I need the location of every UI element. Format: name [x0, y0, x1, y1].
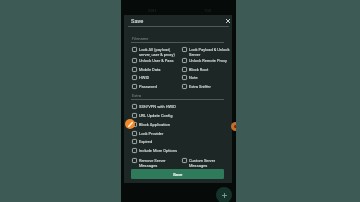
staticText: Custom Server Messages	[189, 158, 216, 168]
staticText: URL Update Config	[139, 113, 173, 118]
button[interactable]: Close	[223, 16, 232, 25]
button[interactable]: URL Update Config	[132, 113, 228, 118]
staticText: Filename	[132, 36, 149, 41]
button[interactable]: Include More Options	[132, 148, 228, 153]
button[interactable]: Custom Server Messages	[182, 158, 230, 168]
staticText: Lock All (payload, server, user & proxy)	[139, 47, 175, 57]
button[interactable]: Add	[216, 187, 232, 202]
button[interactable]: Password	[132, 84, 180, 89]
staticText: 100	[204, 8, 212, 13]
button[interactable]: Block Application	[132, 122, 228, 127]
button[interactable]: Unlock User & Pass	[132, 58, 180, 63]
staticText: Unlock Remote Proxy	[189, 58, 227, 63]
button[interactable]: Lock Provider	[132, 131, 228, 136]
staticText: Extra	[132, 93, 142, 98]
button[interactable]: Mobile Data	[132, 67, 180, 72]
button[interactable]: Extra Sniffer	[182, 84, 232, 89]
staticText: Mobile Data	[139, 67, 161, 72]
staticText: Save	[173, 172, 183, 177]
staticText: HWID	[139, 75, 150, 80]
staticText: Save	[131, 18, 144, 25]
staticText: Extra Sniffer	[189, 84, 211, 89]
button[interactable]: SSH/VPN with HWID	[132, 104, 228, 109]
button[interactable]: Save	[131, 169, 224, 179]
staticText: Lock Payload & Unlock Server	[189, 47, 230, 57]
staticText: SSH/VPN with HWID	[139, 104, 176, 109]
button[interactable]: Unlock Remote Proxy	[182, 58, 232, 63]
button[interactable]: Remove Server Messages	[132, 158, 180, 168]
button[interactable]: Expired	[132, 139, 228, 144]
staticText: Include More Options	[139, 148, 177, 153]
staticText: Block Application	[139, 122, 170, 127]
button[interactable]: Block Root	[182, 67, 232, 72]
staticText: Block Root	[189, 67, 209, 72]
button[interactable]: Lock Payload & Unlock Server	[182, 47, 232, 57]
staticText: Lock Provider	[139, 131, 164, 136]
staticText: Password	[139, 84, 157, 89]
staticText: Expired	[139, 139, 153, 144]
staticText: Note	[189, 75, 198, 80]
staticText: Unlock User & Pass	[139, 58, 174, 63]
button[interactable]: HWID	[132, 75, 180, 80]
staticText: SSH	[148, 8, 156, 13]
staticText: Remove Server Messages	[139, 158, 166, 168]
button[interactable]: Note	[182, 75, 232, 80]
button[interactable]: Lock All (payload, server, user & proxy)	[132, 47, 180, 57]
